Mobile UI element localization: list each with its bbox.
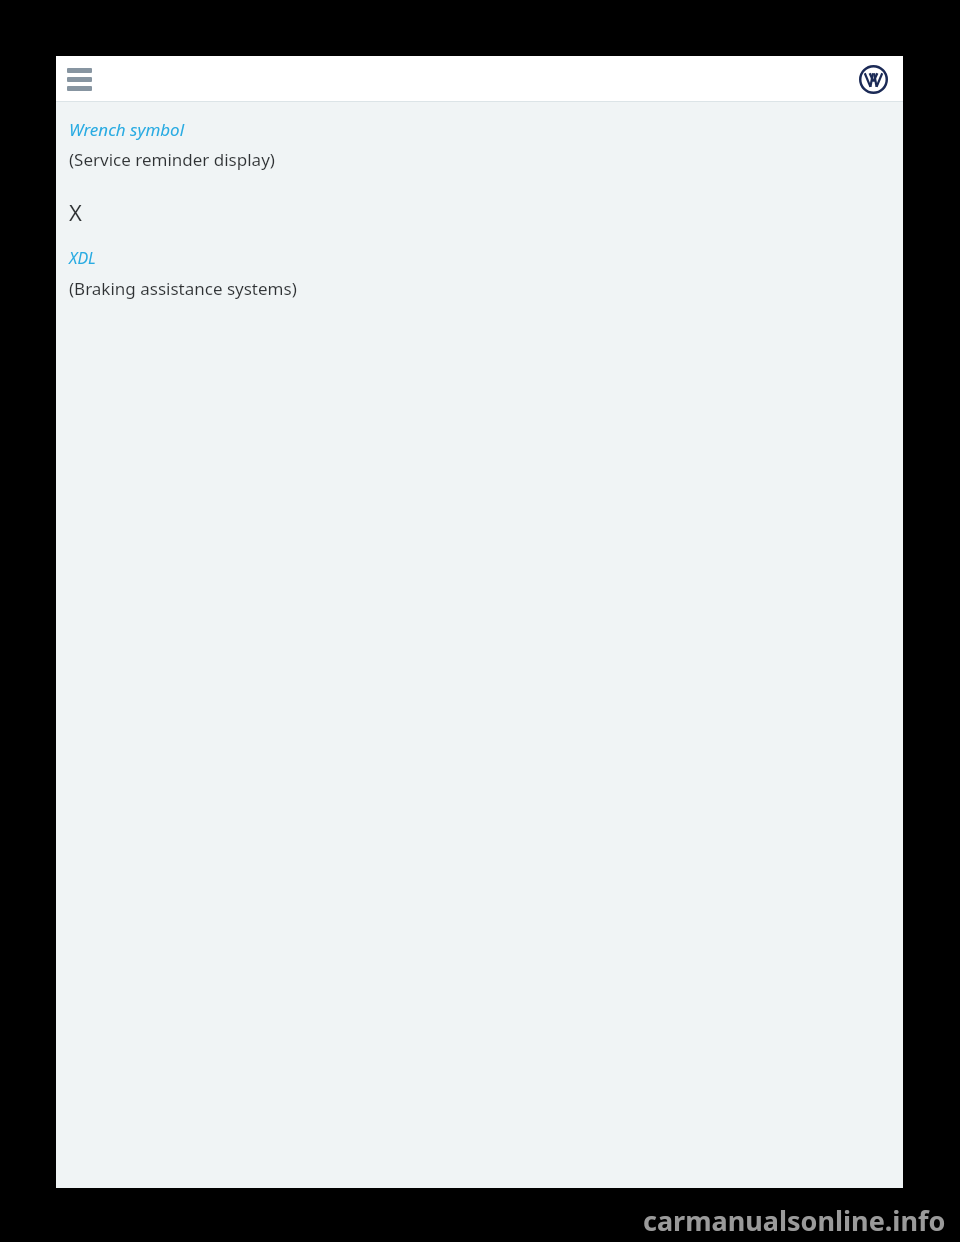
staticText: carmanualsonline.info bbox=[643, 1202, 946, 1239]
staticText: (Braking assistance systems) bbox=[69, 277, 297, 300]
button[interactable]: Open navigation menu bbox=[60, 60, 98, 98]
staticText: (Engine oil pressure) bbox=[69, 89, 232, 93]
staticText: XDL bbox=[69, 247, 96, 269]
button[interactable]: Volkswagen home bbox=[857, 63, 889, 95]
staticText: X bbox=[69, 197, 82, 227]
staticText: Wrench symbol bbox=[69, 118, 185, 141]
staticText: (Service reminder display) bbox=[69, 148, 275, 171]
